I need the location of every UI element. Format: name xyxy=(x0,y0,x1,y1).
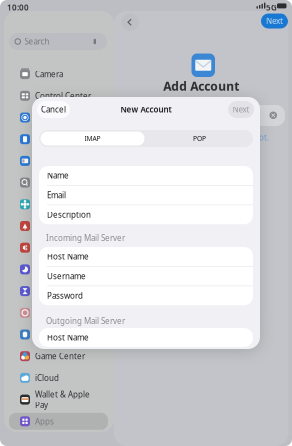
staticText: Camera xyxy=(35,69,63,79)
button[interactable]: IMAP xyxy=(39,130,146,147)
button[interactable]: Touch ID & Passcode xyxy=(9,304,108,321)
staticText: Password xyxy=(47,290,83,301)
button[interactable]: POP xyxy=(146,130,253,147)
button[interactable]: Screen Time xyxy=(9,283,108,300)
button[interactable]: Next xyxy=(228,101,254,118)
staticText: Apps xyxy=(35,416,54,427)
staticText: Home Screen & App Library xyxy=(35,129,94,150)
staticText: Control Center xyxy=(35,90,91,101)
button[interactable]: Apps xyxy=(9,413,108,430)
staticText: Username xyxy=(47,271,86,281)
staticText: Cancel xyxy=(41,104,66,115)
button[interactable]: Host Name xyxy=(39,328,253,347)
button[interactable]: Email xyxy=(39,186,253,205)
staticText: Focus xyxy=(35,264,57,275)
staticText: IMAP xyxy=(84,134,100,143)
staticText: 5G xyxy=(266,2,277,13)
button[interactable]: Display & Brightness xyxy=(9,109,108,126)
button[interactable]: Privacy & Security xyxy=(9,326,108,343)
staticText: Notifications xyxy=(35,221,83,231)
staticText: Host Name xyxy=(47,251,89,262)
button[interactable]: iCloud xyxy=(9,369,108,386)
staticText: Outgoing Mail Server xyxy=(46,316,125,326)
staticText: iCloud xyxy=(35,373,59,383)
staticText: Multitasking & Gestures xyxy=(35,150,89,171)
staticText: Privacy & Security xyxy=(35,329,101,340)
button[interactable]: Focus xyxy=(9,261,108,278)
staticText: Name xyxy=(47,170,69,181)
button[interactable]: Wallet & Apple Pay xyxy=(9,391,108,408)
staticText: Next xyxy=(232,104,249,115)
staticText: Game Center xyxy=(35,351,85,361)
staticText: 10:00 xyxy=(7,2,29,13)
staticText: Wallpaper xyxy=(35,199,72,210)
staticText: Screen Time xyxy=(35,286,81,296)
button[interactable]: Sounds xyxy=(9,239,108,256)
staticText: Search xyxy=(24,36,49,47)
staticText: Touch ID & Passcode xyxy=(35,302,77,323)
button[interactable]: Username xyxy=(39,267,253,286)
button[interactable]: Wallpaper xyxy=(9,196,108,213)
staticText: Next xyxy=(266,16,283,26)
button[interactable]: Game Center xyxy=(9,348,108,365)
staticText: Wallet & Apple Pay xyxy=(35,389,90,410)
button[interactable]: Name xyxy=(39,166,253,185)
staticText: POP xyxy=(193,134,206,143)
staticText: Search xyxy=(35,177,60,188)
staticText: Display & Brightness xyxy=(35,107,76,128)
staticText: Not. xyxy=(253,132,269,143)
button[interactable]: Control Center xyxy=(9,87,108,104)
staticText: Sounds xyxy=(35,242,63,253)
staticText: Email xyxy=(47,190,66,200)
button[interactable]: Notifications xyxy=(9,217,108,234)
button[interactable]: Multitasking & Gestures xyxy=(9,152,108,169)
button[interactable]: Host Name xyxy=(39,247,253,266)
button[interactable]: Search xyxy=(9,174,108,191)
staticText: New Account xyxy=(120,104,171,115)
button[interactable]: Back xyxy=(121,13,139,31)
button[interactable]: Cancel xyxy=(37,101,70,118)
button[interactable]: Home Screen & App Library xyxy=(9,131,108,148)
button[interactable]: Camera xyxy=(9,66,108,83)
staticText: Add Account xyxy=(163,78,239,94)
staticText: Host Name xyxy=(47,332,89,343)
button[interactable]: Description xyxy=(39,205,253,224)
button[interactable]: Next xyxy=(261,13,288,28)
staticText: Description xyxy=(47,209,91,220)
button[interactable]: Password xyxy=(39,286,253,305)
staticText: Incoming Mail Server xyxy=(46,233,125,243)
